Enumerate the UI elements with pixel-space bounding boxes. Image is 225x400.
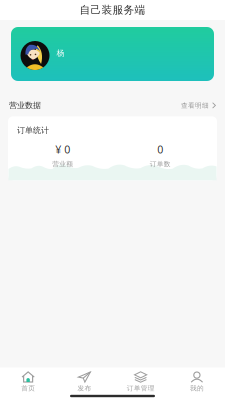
staticText: 订单统计 [17, 125, 49, 135]
button[interactable]: 首页 [0, 362, 56, 397]
staticText: 发布 [77, 384, 91, 392]
staticText: 我的 [190, 384, 204, 392]
button[interactable]: 订单管理 [112, 362, 169, 397]
button[interactable]: 发布 [56, 362, 112, 397]
staticText: 0 [157, 142, 163, 156]
staticText: 订单数 [150, 160, 171, 168]
staticText: ¥ 0 [55, 142, 70, 156]
staticText: 订单管理 [127, 384, 155, 392]
button[interactable]: 查看明细 [181, 101, 216, 109]
staticText: 首页 [21, 384, 35, 392]
staticText: 自己装服务端 [79, 3, 145, 16]
button[interactable]: 我的 [169, 362, 225, 397]
staticText: 杨 [56, 48, 64, 58]
staticText: 营业数据 [9, 100, 41, 110]
staticText: 营业额 [52, 160, 73, 168]
staticText: 查看明细 [181, 101, 209, 109]
